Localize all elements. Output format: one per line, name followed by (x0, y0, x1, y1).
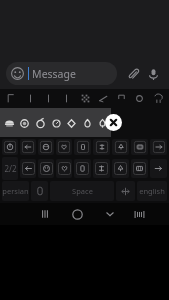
button[interactable]: Key 18 (150, 139, 167, 155)
button[interactable]: Emoji 4 (58, 91, 74, 106)
staticText: 2/2 (4, 163, 17, 174)
button[interactable]: Key 10 (2, 139, 18, 155)
button[interactable]: Variant 4 (49, 116, 63, 130)
button[interactable]: Key 27 (150, 159, 167, 178)
button[interactable]: Key 24 (93, 159, 110, 178)
button[interactable]: Emoji 2 (22, 91, 38, 106)
button[interactable]: Emoji 7 (113, 91, 129, 106)
button[interactable]: Key 11 (20, 139, 36, 155)
button[interactable]: Emoji 6 (95, 91, 111, 106)
button[interactable]: Recents (29, 203, 60, 225)
button[interactable]: Move cursor (116, 181, 135, 201)
button[interactable]: 2/2 (2, 157, 18, 180)
button[interactable]: Key 22 (56, 159, 72, 178)
button[interactable]: Key 21 (38, 159, 54, 178)
button[interactable]: Space (50, 181, 114, 201)
button[interactable]: english (137, 181, 167, 201)
button[interactable]: Emoji 3 (40, 91, 56, 106)
button[interactable]: Switch keyboard (125, 203, 153, 225)
button[interactable]: Key 16 (112, 139, 129, 155)
button[interactable]: Variant 5 (64, 116, 78, 130)
staticText: english (139, 186, 165, 196)
button[interactable]: Variant 1 (2, 116, 16, 130)
staticText: Message (32, 67, 76, 81)
button[interactable]: Home (60, 203, 94, 225)
button[interactable]: Key 17 (131, 139, 148, 155)
button[interactable]: Attach (123, 64, 143, 84)
button[interactable]: Variant 6 (80, 116, 94, 130)
button[interactable]: Key 12 (38, 139, 54, 155)
button[interactable]: Voice message (143, 64, 163, 84)
button[interactable]: Key 13 (56, 139, 72, 155)
button[interactable]: Key 26 (131, 159, 148, 178)
button[interactable]: Key 20 (20, 159, 36, 178)
button[interactable]: Clipboard (31, 181, 48, 201)
button[interactable]: Key 14 (74, 139, 91, 155)
button[interactable]: Variant 7 (95, 116, 109, 130)
staticText: persian (2, 186, 29, 196)
button[interactable]: Key 25 (112, 159, 129, 178)
button[interactable]: persian (2, 181, 29, 201)
button[interactable]: Emoji (6, 62, 117, 85)
button[interactable]: Key 15 (93, 139, 110, 155)
staticText: Space (72, 186, 93, 196)
button[interactable]: Variant 3 (33, 116, 47, 130)
button[interactable]: Variant 2 (17, 116, 31, 130)
button[interactable]: Emoji 9 (150, 91, 166, 106)
button[interactable]: Emoji 5 (77, 91, 93, 106)
button[interactable]: Emoji 8 (131, 91, 147, 106)
button[interactable]: Hide keyboard (94, 203, 125, 225)
other: Emoji (11, 67, 24, 80)
button[interactable]: Emoji 1 (3, 91, 19, 106)
button[interactable]: Key 23 (74, 159, 91, 178)
button[interactable]: Close (105, 114, 122, 131)
